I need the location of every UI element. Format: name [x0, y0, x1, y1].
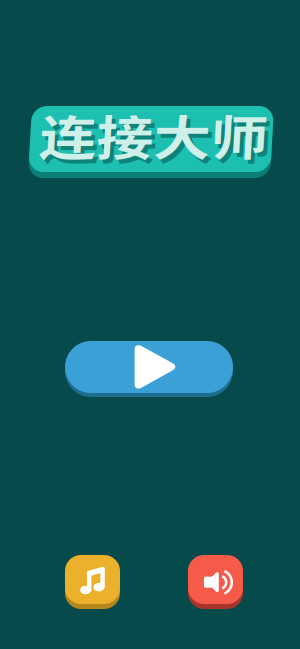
staticText: 连接大师: [45, 104, 237, 173]
staticText: 连接大师: [41, 100, 233, 169]
button[interactable]: Sound: [188, 555, 243, 609]
button[interactable]: Play: [65, 341, 233, 397]
button[interactable]: Music: [65, 555, 120, 609]
